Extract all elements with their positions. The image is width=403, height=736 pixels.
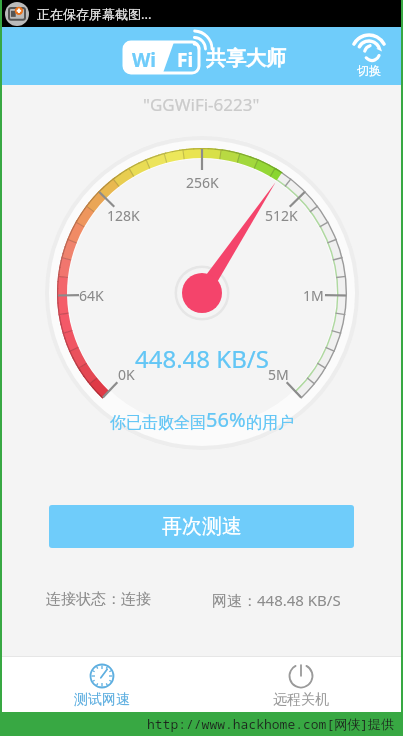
staticText: 网速：448.48 KB/S — [212, 590, 341, 610]
staticText: 正在保存屏幕截图... — [37, 5, 152, 23]
staticText: 连接状态：连接 — [46, 590, 151, 609]
staticText: 1M — [303, 286, 324, 305]
staticText: 共享大师 — [206, 46, 286, 71]
button[interactable]: 再次测速 — [49, 505, 354, 548]
staticText: 0K — [118, 365, 135, 384]
button[interactable]: 测试网速 — [2, 657, 201, 712]
staticText: http://www.hackhome.com[网侠]提供 — [147, 715, 395, 733]
staticText: 你已击败全国 — [110, 413, 206, 433]
staticText: 64K — [79, 286, 104, 305]
staticText: 再次测速 — [162, 514, 242, 539]
staticText: 5M — [268, 365, 289, 384]
staticText: 远程关机 — [273, 691, 329, 709]
staticText: 切换 — [357, 63, 381, 78]
staticText: "GGWiFi-6223" — [143, 93, 260, 116]
button[interactable]: 切换 WiFi — [349, 34, 389, 78]
staticText: 的用户 — [246, 413, 294, 433]
staticText: 448.48 KB/S — [135, 342, 269, 375]
staticText: Wi — [132, 47, 157, 73]
staticText: 128K — [107, 206, 140, 225]
staticText: 512K — [265, 206, 298, 225]
button[interactable]: 远程关机 — [201, 657, 401, 712]
staticText: 256K — [186, 173, 219, 192]
staticText: Fi — [177, 47, 194, 73]
staticText: 56% — [206, 406, 246, 433]
staticText: 测试网速 — [74, 691, 130, 709]
